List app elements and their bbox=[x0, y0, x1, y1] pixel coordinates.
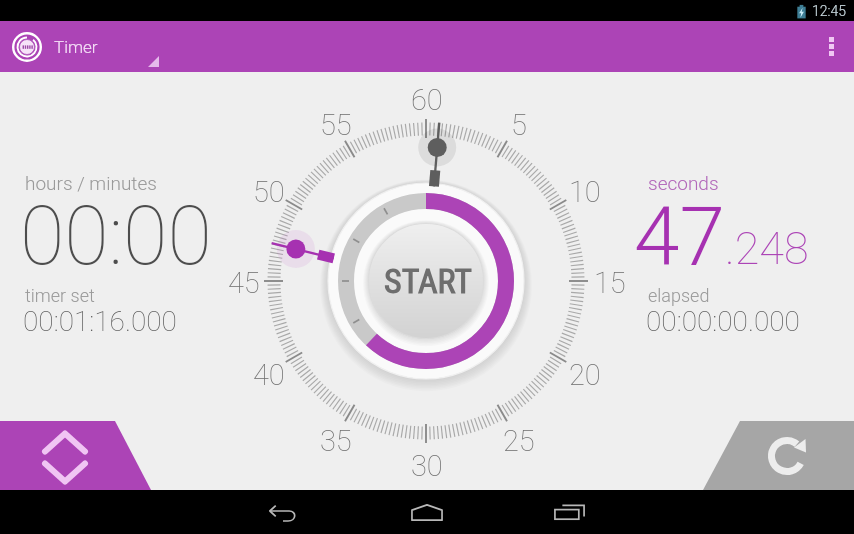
staticText: 47 bbox=[634, 189, 725, 285]
staticText: 40 bbox=[253, 358, 285, 392]
staticText: 10 bbox=[569, 175, 601, 209]
staticText: 5 bbox=[511, 108, 527, 142]
staticText: timer set bbox=[25, 285, 95, 306]
staticText: elapsed bbox=[648, 285, 710, 306]
button[interactable]: More options bbox=[808, 21, 854, 72]
staticText: 30 bbox=[411, 449, 443, 483]
button[interactable]: START bbox=[372, 225, 484, 337]
staticText: START bbox=[384, 261, 473, 301]
staticText: 15 bbox=[594, 266, 626, 300]
button[interactable]: Home bbox=[382, 490, 472, 534]
staticText: 00:00:00.000 bbox=[646, 305, 800, 338]
staticText: 25 bbox=[503, 424, 535, 458]
staticText: Timer bbox=[54, 37, 98, 57]
staticText: hours / minutes bbox=[25, 172, 157, 194]
staticText: 00:00 bbox=[20, 189, 212, 284]
button[interactable]: Recent apps bbox=[524, 490, 614, 534]
staticText: 35 bbox=[320, 424, 352, 458]
staticText: .248 bbox=[725, 222, 809, 275]
button[interactable]: Reset timer bbox=[702, 421, 854, 490]
button[interactable]: Back bbox=[238, 490, 328, 534]
staticText: 50 bbox=[253, 175, 285, 209]
staticText: seconds bbox=[648, 172, 719, 194]
staticText: 60 bbox=[411, 83, 443, 117]
staticText: 45 bbox=[228, 266, 260, 300]
staticText: 00:01:16.000 bbox=[23, 305, 177, 338]
button[interactable]: Adjust timer bbox=[0, 421, 152, 490]
staticText: 20 bbox=[569, 358, 601, 392]
staticText: 12:45 bbox=[812, 3, 847, 19]
staticText: 55 bbox=[320, 108, 352, 142]
